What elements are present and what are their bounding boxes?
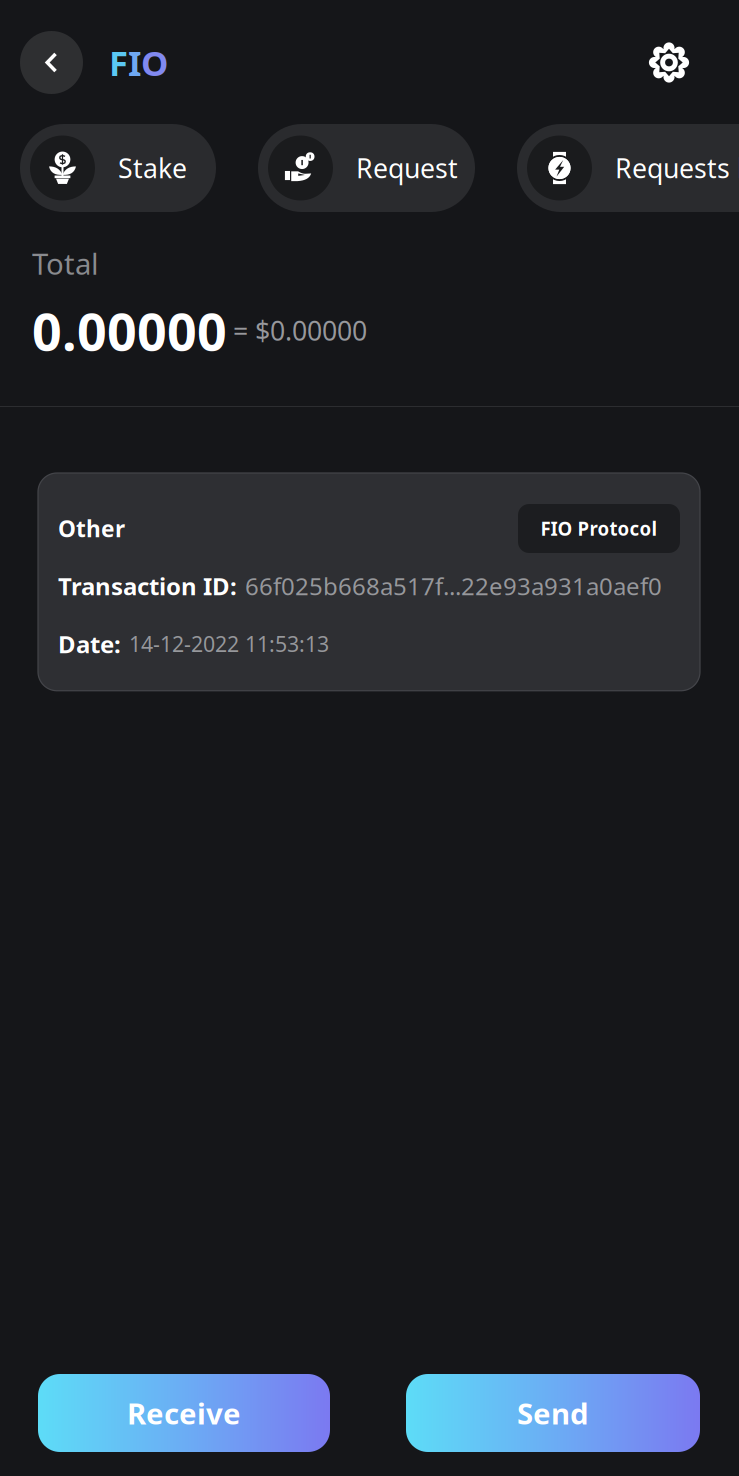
- staticText: Requests history: [615, 150, 739, 186]
- staticText: Date:: [58, 628, 121, 660]
- staticText: 66f025b668a517f...22e93a931a0aef0: [245, 570, 662, 602]
- staticText: Receive: [127, 1393, 241, 1432]
- staticText: Request: [356, 150, 458, 186]
- button[interactable]: Stake: [20, 124, 216, 212]
- staticText: = $0.00000: [233, 313, 367, 348]
- staticText: Stake: [118, 150, 187, 186]
- button[interactable]: Back: [20, 31, 83, 94]
- staticText: 14-12-2022 11:53:13: [129, 630, 329, 658]
- button[interactable]: Request: [258, 124, 475, 212]
- staticText: Other: [58, 513, 125, 544]
- staticText: O: [141, 39, 168, 85]
- staticText: Send: [517, 1393, 589, 1432]
- button[interactable]: Receive: [38, 1374, 330, 1452]
- staticText: FIO Protocol: [540, 516, 657, 541]
- staticText: Total: [32, 244, 99, 283]
- button[interactable]: Settings: [643, 36, 695, 88]
- staticText: 0.00000: [32, 296, 227, 365]
- staticText: F: [109, 39, 128, 85]
- staticText: Transaction ID:: [58, 570, 237, 602]
- button[interactable]: FIO Protocol: [518, 504, 680, 553]
- button[interactable]: Send: [406, 1374, 700, 1452]
- button[interactable]: Requests history: [517, 124, 739, 212]
- staticText: I: [128, 39, 141, 85]
